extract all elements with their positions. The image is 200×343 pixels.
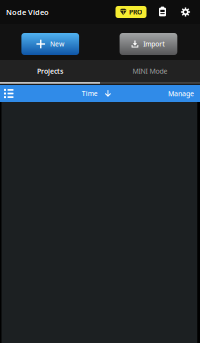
button[interactable]: Manage (166, 85, 196, 102)
button[interactable]: Projects (151, 1, 174, 23)
staticText: MINI Mode (132, 66, 167, 76)
staticText: Projects (37, 66, 63, 76)
staticText: PRO (129, 7, 142, 17)
staticText: New (50, 39, 64, 49)
button[interactable]: MINI Mode (100, 60, 200, 82)
button[interactable]: New (21, 33, 79, 55)
button[interactable]: Projects (0, 60, 100, 82)
button[interactable]: List layout (4, 85, 22, 102)
button[interactable]: Time (82, 85, 111, 102)
staticText: Import (143, 39, 165, 49)
staticText: Time (82, 89, 98, 98)
staticText: Manage (168, 89, 194, 98)
staticText: Node Video (6, 7, 49, 17)
button[interactable]: Settings (174, 1, 197, 23)
button[interactable]: PRO (115, 6, 146, 18)
button[interactable]: Import (120, 33, 177, 55)
